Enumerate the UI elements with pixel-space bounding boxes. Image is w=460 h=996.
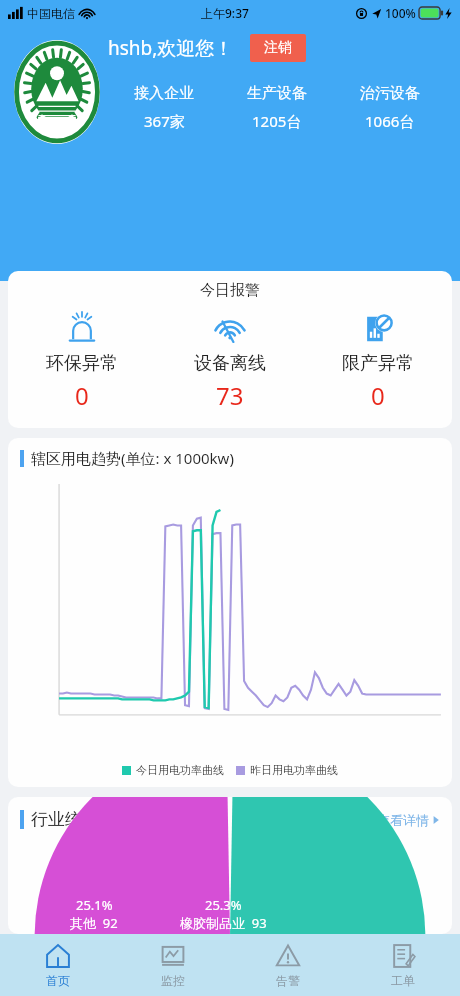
button[interactable]: 接入企业	[108, 84, 220, 131]
staticText: 25.1%	[76, 896, 113, 914]
button[interactable]: 工单	[345, 934, 460, 996]
staticText: 0	[75, 379, 89, 412]
staticText: 告警	[276, 973, 300, 988]
button[interactable]: 环保异常	[8, 310, 156, 414]
button[interactable]: 设备离线	[156, 310, 304, 414]
staticText: 查看详情	[377, 812, 429, 828]
button[interactable]: 注销	[250, 34, 306, 62]
staticText: 今日报警	[8, 281, 452, 300]
staticText: 100%	[385, 5, 416, 21]
staticText: 367家	[144, 111, 185, 131]
button[interactable]: 告警	[230, 934, 345, 996]
staticText: 其他 92	[70, 914, 118, 932]
staticText: 橡胶制品业 93	[180, 914, 267, 932]
staticText: 中国电信	[27, 6, 75, 21]
button[interactable]: 监控	[115, 934, 230, 996]
staticText: 工单	[391, 973, 415, 988]
staticText: 治污设备	[360, 84, 420, 103]
staticText: 昨日用电功率曲线	[250, 763, 338, 777]
staticText: 监控	[161, 973, 185, 988]
staticText: 73	[216, 379, 244, 412]
staticText: 今日用电功率曲线	[136, 763, 224, 777]
staticText: 行业统计	[31, 809, 99, 830]
staticText: 接入企业	[134, 84, 194, 103]
staticText: 辖区用电趋势(单位: x 1000kw)	[31, 448, 234, 468]
staticText: 1205台	[252, 111, 302, 131]
staticText: 生产设备	[247, 84, 307, 103]
staticText: 设备离线	[194, 352, 266, 375]
staticText: 环保异常	[46, 352, 118, 375]
staticText: 首页	[46, 973, 70, 988]
button[interactable]: 治污设备	[333, 84, 446, 131]
staticText: 0	[371, 379, 385, 412]
button[interactable]: 生产设备	[220, 84, 333, 131]
button[interactable]: 查看详情	[377, 812, 440, 828]
staticText: 注销	[264, 39, 292, 57]
staticText: 1066台	[365, 111, 415, 131]
staticText: 上午9:37	[201, 5, 249, 21]
button[interactable]: 限产异常	[304, 310, 452, 414]
staticText: 25.3%	[205, 896, 242, 914]
staticText: hshb,欢迎您！	[108, 35, 234, 61]
staticText: 限产异常	[342, 352, 414, 375]
button[interactable]: 首页	[0, 934, 115, 996]
